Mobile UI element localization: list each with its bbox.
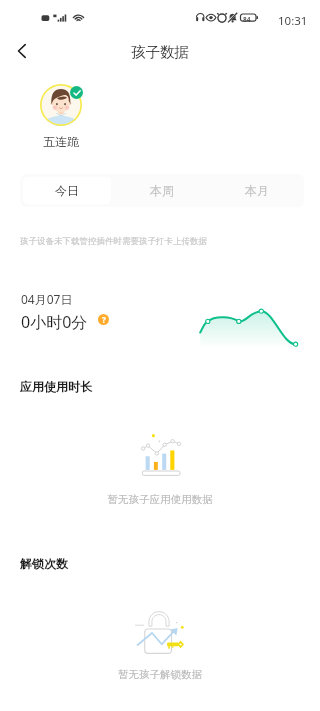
staticText: 暂无孩子解锁数据 [0,668,320,681]
staticText: 0小时0分 [21,311,88,333]
staticText: ? [102,314,106,325]
staticText: 04月07日 [21,291,73,307]
staticText: 84 [243,15,251,24]
staticText: 本周 [150,183,174,198]
button[interactable]: 本月 [212,177,301,204]
staticText: 五连跪 [25,134,97,149]
button[interactable]: 今日 [23,177,111,204]
button[interactable]: 说明 [98,314,109,325]
staticText: 今日 [55,183,79,198]
staticText: 孩子设备未下载管控插件时需要孩子打卡上传数据 [20,236,207,247]
button[interactable]: 返回 [2,30,42,72]
staticText: 孩子数据 [0,43,320,61]
staticText: 本月 [245,183,269,198]
staticText: 暂无孩子应用使用数据 [0,493,320,506]
button[interactable]: 本周 [117,177,206,204]
staticText: 解锁次数 [20,556,68,571]
staticText: 应用使用时长 [20,379,92,394]
staticText: 10:31 [278,13,308,29]
button[interactable]: 孩子头像 [40,84,82,126]
